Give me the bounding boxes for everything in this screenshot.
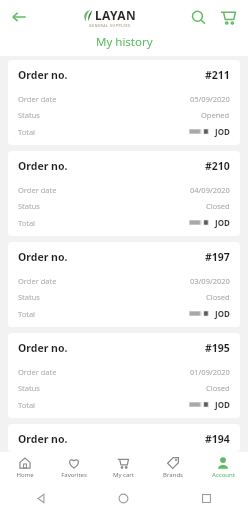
button[interactable]: Order no. (8, 60, 240, 145)
staticText: JOD (215, 126, 230, 137)
staticText: Total (18, 309, 36, 319)
staticText: 03/09/2020 (190, 276, 230, 286)
staticText: Brands (163, 471, 183, 479)
staticText: JOD (215, 217, 230, 228)
staticText: #195 (205, 341, 230, 355)
button[interactable]: Home (0, 457, 49, 479)
staticText: Status (18, 292, 40, 302)
button[interactable]: Order no. (8, 151, 240, 236)
staticText: Order no. (18, 432, 68, 446)
button[interactable]: Home (82, 484, 165, 512)
staticText: #197 (205, 250, 230, 264)
staticText: Status (18, 383, 40, 393)
staticText: Order no. (18, 159, 68, 173)
staticText: Order date (18, 276, 57, 286)
staticText: #211 (205, 68, 230, 82)
staticText: Opened (201, 110, 230, 120)
staticText: LAYAN (95, 7, 137, 23)
staticText: Total (18, 218, 36, 228)
staticText: Total (18, 127, 36, 137)
button[interactable]: My cart (98, 457, 148, 479)
staticText: 05/09/2020 (190, 94, 230, 104)
button[interactable]: Search (184, 3, 212, 31)
staticText: Closed (206, 201, 230, 211)
staticText: Favorites (61, 471, 87, 479)
staticText: Status (18, 110, 40, 120)
staticText: #194 (205, 432, 230, 446)
staticText: My cart (113, 471, 134, 479)
staticText: Order no. (18, 68, 68, 82)
staticText: Order date (18, 367, 57, 377)
staticText: My history (96, 34, 153, 50)
button[interactable]: Order no. (8, 424, 240, 452)
button[interactable]: Account (198, 457, 248, 479)
staticText: JOD (215, 308, 230, 319)
staticText: Closed (206, 292, 230, 302)
staticText: Order no. (18, 341, 68, 355)
button[interactable]: Back (4, 2, 34, 32)
staticText: Order date (18, 94, 57, 104)
button[interactable]: Order no. (8, 242, 240, 327)
button[interactable]: Favorites (49, 457, 98, 479)
staticText: 01/09/2020 (190, 367, 230, 377)
button[interactable]: Order no. (8, 333, 240, 418)
staticText: Closed (206, 383, 230, 393)
staticText: Account (212, 471, 235, 479)
staticText: Status (18, 201, 40, 211)
staticText: Order no. (18, 250, 68, 264)
staticText: JOD (215, 399, 230, 410)
staticText: #210 (205, 159, 230, 173)
button[interactable]: Recents (165, 484, 248, 512)
button[interactable]: Brands (148, 457, 198, 479)
staticText: Home (16, 471, 34, 479)
button[interactable]: Cart (214, 3, 242, 31)
staticText: 04/09/2020 (190, 185, 230, 195)
staticText: Order date (18, 185, 57, 195)
button[interactable]: Back (0, 484, 82, 512)
staticText: GENERAL SUPPLIES (89, 23, 131, 28)
staticText: Total (18, 400, 36, 410)
